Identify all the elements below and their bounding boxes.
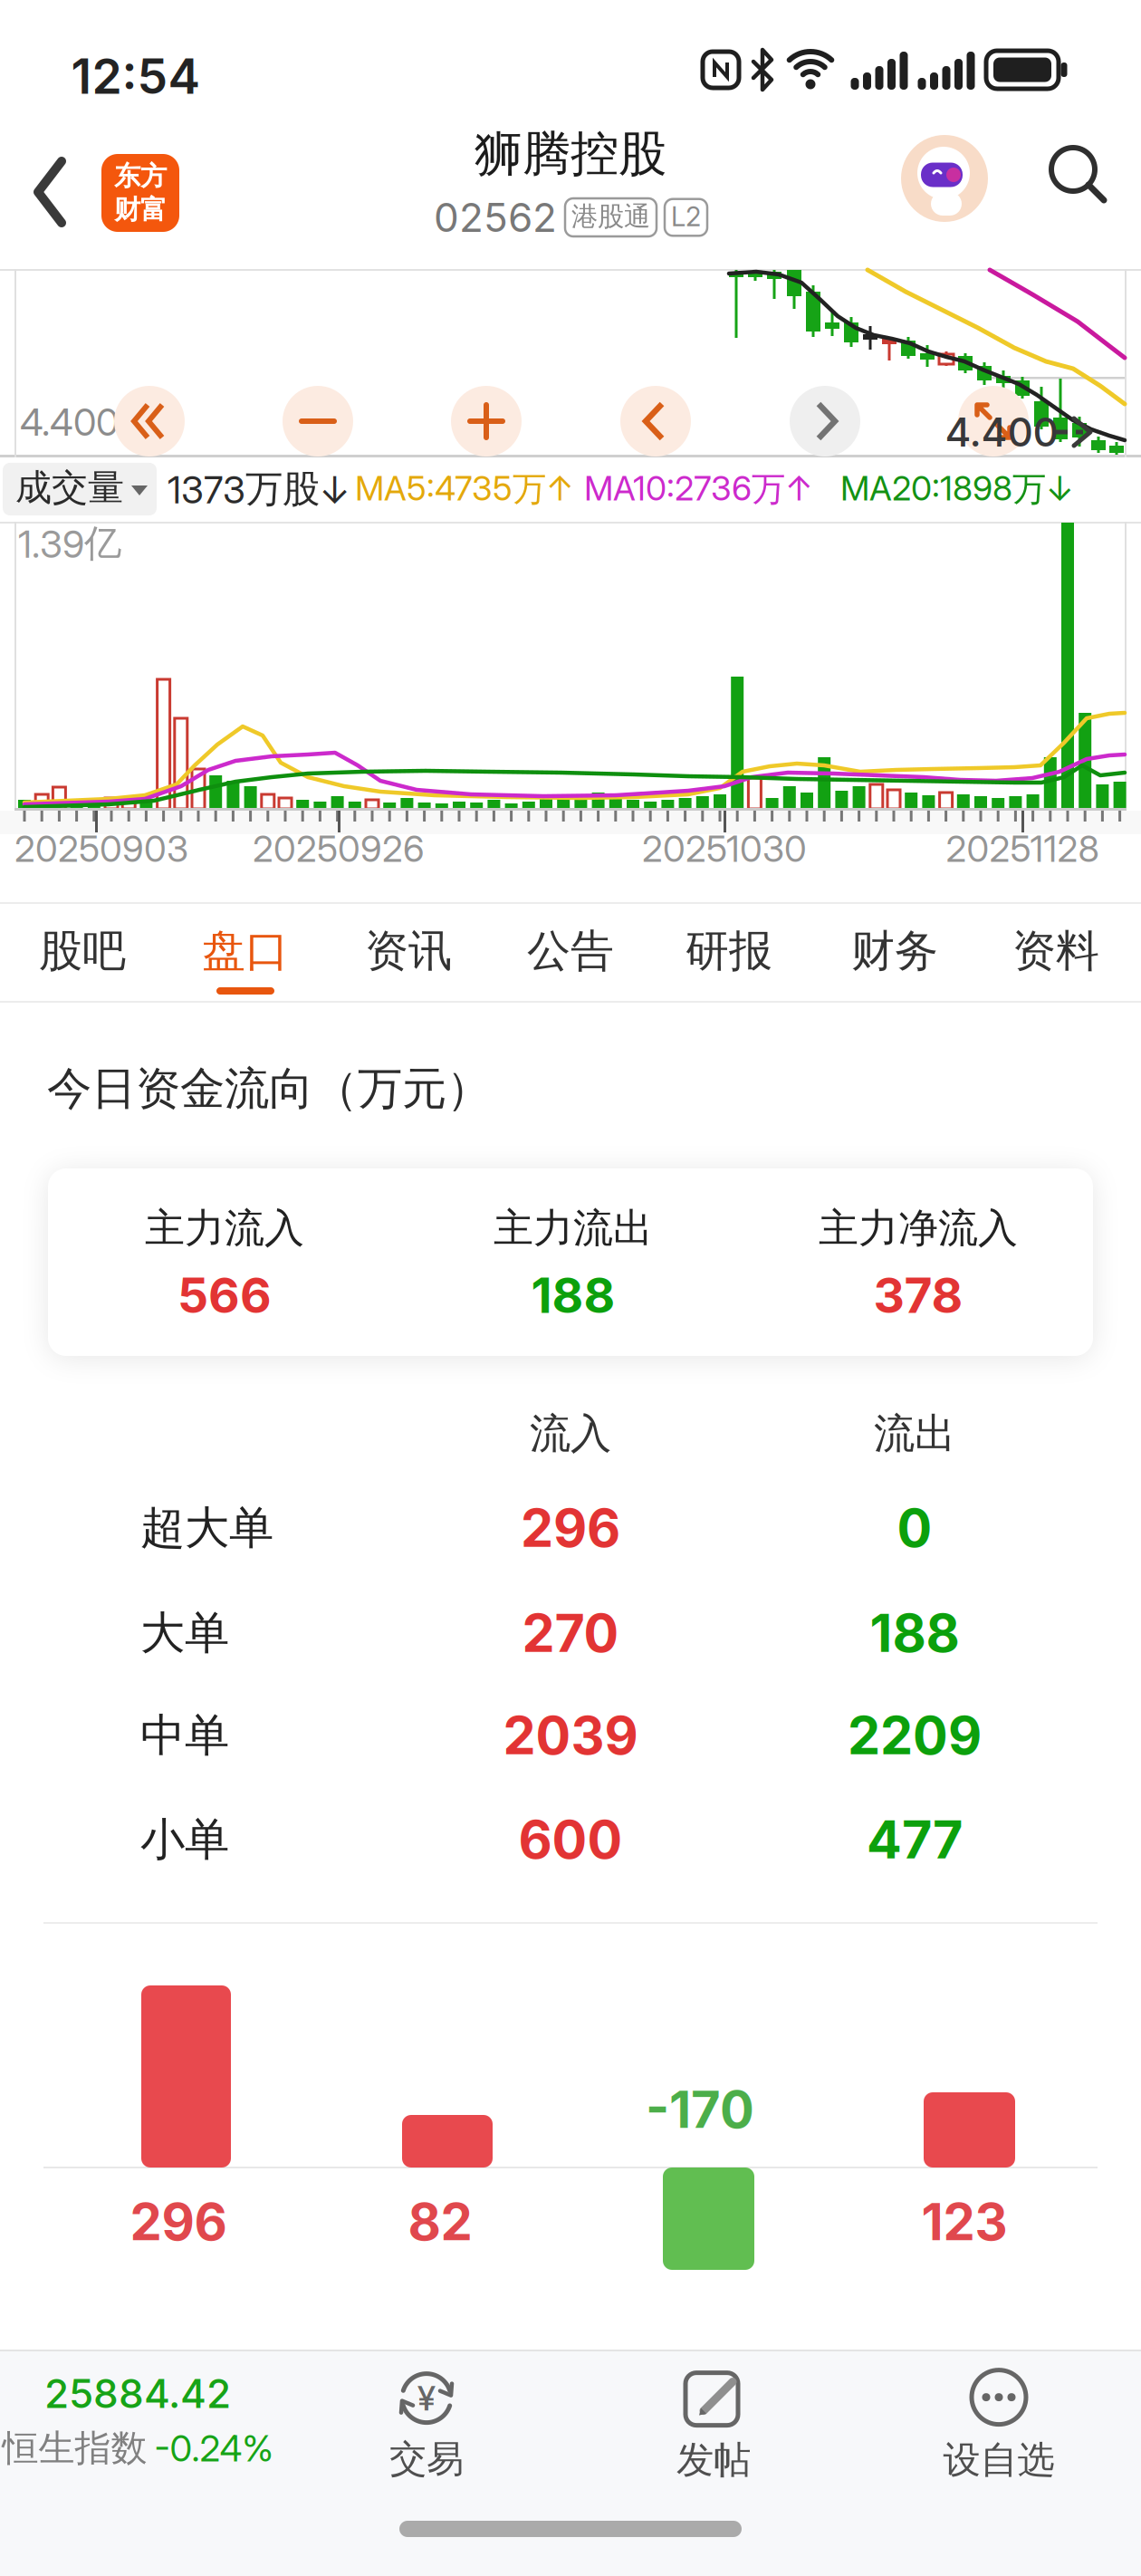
staticText: MA10:2736万↑ — [584, 468, 812, 510]
staticText: 477 — [867, 1809, 963, 1870]
staticText: 12:54 — [71, 48, 201, 105]
staticText: 25884.42 — [44, 2370, 231, 2417]
staticText: 主力流出 — [494, 1204, 653, 1253]
staticText: 财务 — [851, 924, 938, 978]
button[interactable]: 搜索 — [1046, 144, 1109, 207]
button[interactable]: 后一个 — [790, 386, 860, 457]
staticText: 2039 — [503, 1705, 638, 1766]
staticText: 4.400 — [945, 409, 1058, 456]
staticText: 盘口 — [202, 924, 289, 978]
staticText: 流入 — [530, 1409, 611, 1459]
staticText: 20251030 — [642, 827, 807, 870]
staticText: 270 — [522, 1602, 619, 1664]
button[interactable]: Back — [34, 158, 67, 226]
staticText: 中单 — [140, 1708, 229, 1763]
button[interactable]: ¥ — [336, 2365, 517, 2486]
staticText: 1373万股↓ — [168, 466, 350, 512]
button[interactable]: 放大 — [451, 386, 522, 457]
staticText: 东方 — [114, 160, 167, 192]
staticText: 公告 — [527, 924, 614, 978]
staticText: -170 — [646, 2080, 754, 2140]
button[interactable]: 财务 — [827, 906, 963, 996]
button[interactable]: 成交量 — [3, 463, 157, 515]
staticText: 4.400 — [20, 400, 119, 444]
staticText: 港股通 — [571, 200, 650, 233]
staticText: 小单 — [140, 1812, 229, 1867]
staticText: 600 — [518, 1809, 623, 1870]
staticText: 资料 — [1012, 924, 1099, 978]
staticText: 1.39亿 — [18, 520, 121, 566]
button[interactable]: 25884.42 — [0, 2361, 278, 2479]
button[interactable]: 研报 — [661, 906, 797, 996]
staticText: MA20:1898万↓ — [840, 468, 1073, 510]
button[interactable]: 资料 — [988, 906, 1124, 996]
staticText: 20250903 — [14, 827, 188, 870]
staticText: 02562 — [434, 194, 557, 241]
button[interactable]: 发帖 — [623, 2365, 804, 2486]
staticText: 超大单 — [140, 1501, 273, 1555]
staticText: ¥ — [417, 2378, 436, 2418]
staticText: 主力流入 — [145, 1204, 304, 1253]
button[interactable]: 资讯 — [340, 906, 476, 996]
staticText: 188 — [531, 1267, 615, 1324]
staticText: 研报 — [686, 924, 772, 978]
staticText: 296 — [130, 2192, 227, 2252]
button[interactable]: 盘口 — [177, 906, 313, 996]
staticText: 今日资金流向（万元） — [47, 1061, 491, 1116]
button[interactable]: 缩小 — [283, 386, 353, 457]
button[interactable]: 设自选 — [890, 2365, 1107, 2486]
staticText: 流出 — [874, 1409, 955, 1459]
button[interactable]: 公告 — [503, 906, 638, 996]
staticText: 大单 — [140, 1606, 229, 1661]
button[interactable]: 快退 — [114, 386, 185, 457]
staticText: MA5:4735万↑ — [355, 468, 573, 510]
staticText: 资讯 — [365, 924, 452, 978]
staticText: 20250926 — [253, 827, 425, 870]
staticText: -0.24% — [154, 2427, 273, 2470]
button[interactable]: 股吧 — [14, 906, 150, 996]
staticText: 主力净流入 — [819, 1204, 1018, 1253]
staticText: 财富 — [114, 193, 167, 226]
staticText: 82 — [408, 2192, 472, 2252]
staticText: 发帖 — [676, 2437, 751, 2483]
staticText: 296 — [521, 1497, 620, 1559]
staticText: 狮腾控股 — [475, 124, 666, 184]
staticText: 恒生指数 — [2, 2426, 147, 2470]
staticText: 成交量 — [15, 465, 124, 510]
button[interactable]: AI 助手 — [901, 135, 988, 222]
button[interactable]: 东方财富 — [101, 154, 179, 232]
staticText: 188 — [870, 1602, 959, 1664]
staticText: 0 — [897, 1497, 932, 1559]
button[interactable]: 前一个 — [620, 386, 691, 457]
staticText: 123 — [921, 2192, 1007, 2252]
staticText: 20251128 — [946, 827, 1099, 870]
staticText: 股吧 — [39, 924, 126, 978]
staticText: 378 — [873, 1267, 963, 1324]
staticText: 566 — [177, 1267, 272, 1324]
staticText: L2 — [671, 201, 701, 232]
staticText: 交易 — [389, 2436, 464, 2482]
staticText: 设自选 — [943, 2437, 1055, 2483]
button[interactable]: 全屏 — [958, 386, 1029, 457]
staticText: 2209 — [848, 1705, 982, 1766]
